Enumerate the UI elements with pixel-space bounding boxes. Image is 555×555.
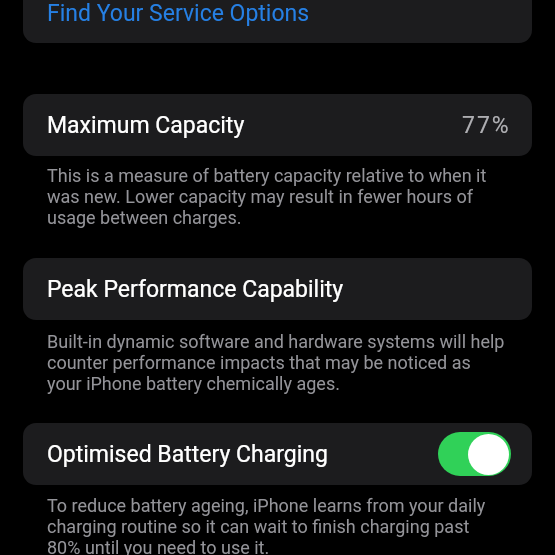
button[interactable]: Optimised Battery Charging <box>23 423 532 485</box>
button[interactable]: Peak Performance Capability <box>23 258 532 320</box>
staticText: This is a measure of battery capacity re… <box>47 165 505 228</box>
staticText: Maximum Capacity <box>47 112 245 139</box>
staticText: To reduce battery ageing, iPhone learns … <box>47 495 505 555</box>
staticText: Optimised Battery Charging <box>47 441 328 468</box>
staticText: 77% <box>462 112 511 139</box>
button[interactable]: Maximum Capacity <box>23 94 532 156</box>
staticText: Built-in dynamic software and hardware s… <box>47 331 505 394</box>
staticText: Peak Performance Capability <box>47 276 344 303</box>
button[interactable]: Optimised Battery Charging, on <box>438 432 511 476</box>
button[interactable]: Find Your Service Options <box>23 0 532 43</box>
staticText: Find Your Service Options <box>47 0 310 27</box>
